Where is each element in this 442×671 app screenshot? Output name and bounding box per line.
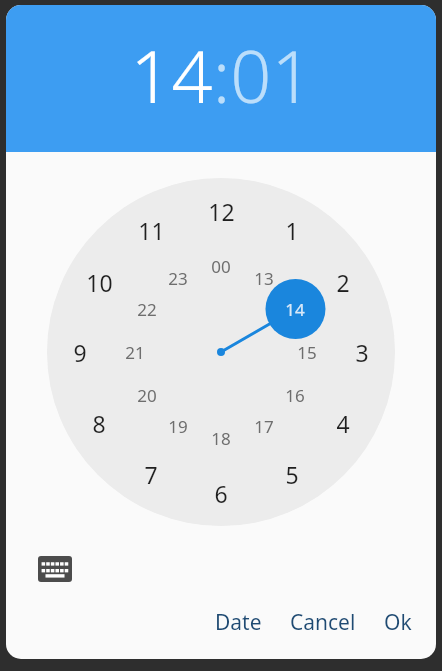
button[interactable]: 7 [130, 453, 172, 495]
staticText: 19 [168, 415, 188, 438]
staticText: 15 [297, 341, 317, 364]
button[interactable]: Cancel [276, 600, 370, 645]
button[interactable]: Ok [370, 600, 426, 645]
staticText: 14 [285, 298, 305, 321]
staticText: 8 [92, 408, 106, 439]
button[interactable]: 00 [200, 245, 242, 287]
button[interactable]: 15 [286, 331, 328, 373]
staticText: 16 [285, 384, 305, 407]
staticText: 23 [168, 267, 188, 290]
staticText: 3 [355, 337, 369, 368]
button[interactable]: 13 [243, 257, 285, 299]
staticText: 00 [211, 255, 231, 278]
staticText: 18 [211, 427, 231, 450]
staticText: 5 [285, 459, 299, 490]
button[interactable]: 3 [341, 331, 383, 373]
button[interactable]: Switch to keyboard input [32, 546, 78, 592]
button[interactable] [47, 178, 395, 526]
staticText: 11 [138, 215, 165, 246]
button[interactable]: 1 [271, 209, 313, 251]
staticText: 10 [86, 267, 113, 298]
staticText: Date [215, 608, 262, 637]
button[interactable]: 2 [322, 261, 364, 303]
button[interactable]: 14:01 [6, 5, 436, 152]
staticText: 13 [254, 267, 274, 290]
button[interactable]: 14 [274, 288, 316, 330]
button[interactable]: 9 [59, 331, 101, 373]
staticText: 2 [336, 267, 350, 298]
staticText: Ok [384, 608, 412, 637]
button[interactable]: 8 [78, 402, 120, 444]
staticText: Cancel [290, 608, 356, 637]
button[interactable]: 23 [157, 257, 199, 299]
staticText: 14:01 [130, 26, 313, 124]
button[interactable]: Date [201, 600, 276, 645]
staticText: 17 [254, 415, 274, 438]
button[interactable]: 11 [130, 209, 172, 251]
button[interactable]: 6 [200, 472, 242, 514]
staticText: 4 [336, 408, 350, 439]
staticText: 21 [125, 341, 145, 364]
button[interactable]: 16 [274, 374, 316, 416]
staticText: 1 [285, 215, 299, 246]
staticText: 12 [208, 196, 235, 227]
button[interactable]: 19 [157, 405, 199, 447]
button[interactable]: 10 [78, 261, 120, 303]
staticText: 6 [214, 478, 228, 509]
staticText: 22 [137, 298, 157, 321]
button[interactable]: 21 [114, 331, 156, 373]
button[interactable]: 5 [271, 453, 313, 495]
button[interactable]: 17 [243, 405, 285, 447]
staticText: 20 [137, 384, 157, 407]
button[interactable]: 22 [126, 288, 168, 330]
staticText: 9 [73, 337, 87, 368]
button[interactable]: 12 [200, 190, 242, 232]
button[interactable]: 4 [322, 402, 364, 444]
button[interactable]: 18 [200, 417, 242, 459]
button[interactable]: 20 [126, 374, 168, 416]
staticText: 7 [144, 459, 158, 490]
